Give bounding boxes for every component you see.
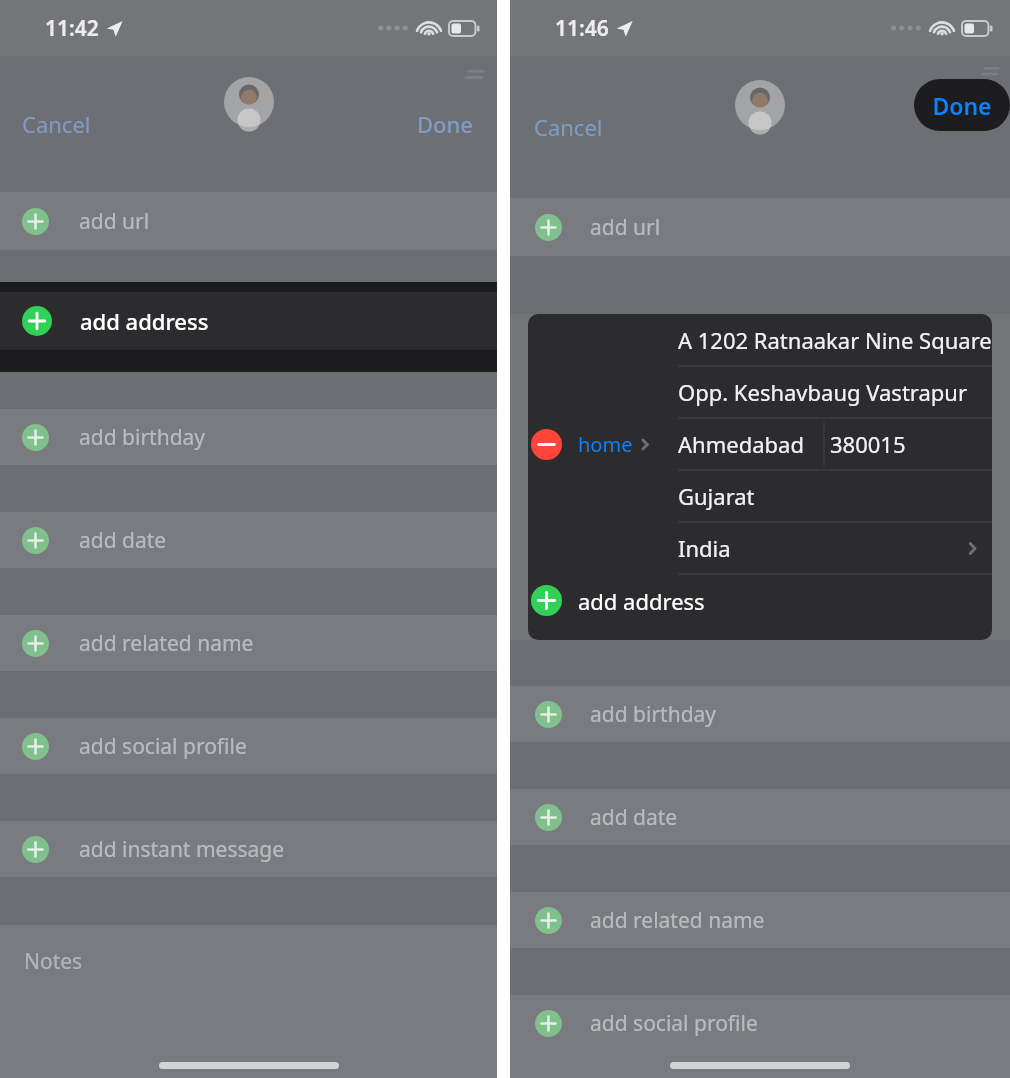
button[interactable]: 380015 (830, 418, 906, 470)
button[interactable]: add date (0, 512, 497, 568)
button[interactable]: add social profile (0, 718, 497, 774)
staticText: add social profile (79, 732, 247, 761)
staticText: add date (79, 526, 167, 555)
staticText: A 1202 Ratnaakar Nine Square (678, 325, 992, 355)
button[interactable]: add social profile (510, 995, 1010, 1051)
staticText: add birthday (590, 700, 717, 729)
staticText: home (578, 431, 633, 458)
button[interactable]: add address (528, 574, 992, 626)
staticText: 11:46 (555, 14, 609, 43)
staticText: add address (80, 306, 209, 336)
button[interactable]: Delete address (531, 429, 562, 460)
staticText: add related name (79, 629, 254, 658)
button[interactable]: Cancel (22, 109, 91, 139)
staticText: add address (578, 586, 705, 616)
staticText: Opp. Keshavbaug Vastrapur (678, 377, 968, 407)
button[interactable]: Done (914, 79, 1010, 131)
button[interactable]: home (578, 431, 650, 458)
button[interactable]: Gujarat (678, 470, 992, 522)
staticText: India (678, 533, 731, 563)
staticText: add related name (590, 906, 765, 935)
button[interactable]: India (678, 522, 992, 574)
button[interactable]: Cancel (534, 112, 603, 142)
button[interactable]: add url (0, 192, 497, 250)
button[interactable]: A 1202 Ratnaakar Nine Square (678, 314, 992, 366)
button[interactable]: Profile photo (735, 80, 785, 130)
staticText: 11:42 (45, 14, 99, 43)
staticText: add birthday (79, 423, 206, 452)
button[interactable]: add birthday (0, 409, 497, 465)
button[interactable]: Profile photo (224, 77, 274, 127)
button[interactable]: add related name (0, 615, 497, 671)
button[interactable]: add birthday (510, 686, 1010, 742)
staticText: add url (79, 207, 150, 236)
button[interactable]: Done (417, 109, 473, 139)
button[interactable]: Opp. Keshavbaug Vastrapur (678, 366, 992, 418)
button[interactable]: add date (510, 789, 1010, 845)
staticText: 380015 (830, 429, 906, 459)
staticText: Ahmedabad (678, 429, 804, 459)
button[interactable]: add related name (510, 892, 1010, 948)
button[interactable]: add instant message (0, 821, 497, 877)
button[interactable]: add url (510, 198, 1010, 256)
staticText: Gujarat (678, 481, 755, 511)
staticText: add instant message (79, 835, 285, 864)
staticText: add date (590, 803, 678, 832)
button[interactable]: Ahmedabad (678, 418, 826, 470)
staticText: add url (590, 213, 661, 242)
staticText: add social profile (590, 1009, 758, 1038)
staticText: Done (932, 90, 992, 121)
button[interactable]: add address (0, 292, 497, 350)
staticText: Notes (24, 947, 83, 976)
